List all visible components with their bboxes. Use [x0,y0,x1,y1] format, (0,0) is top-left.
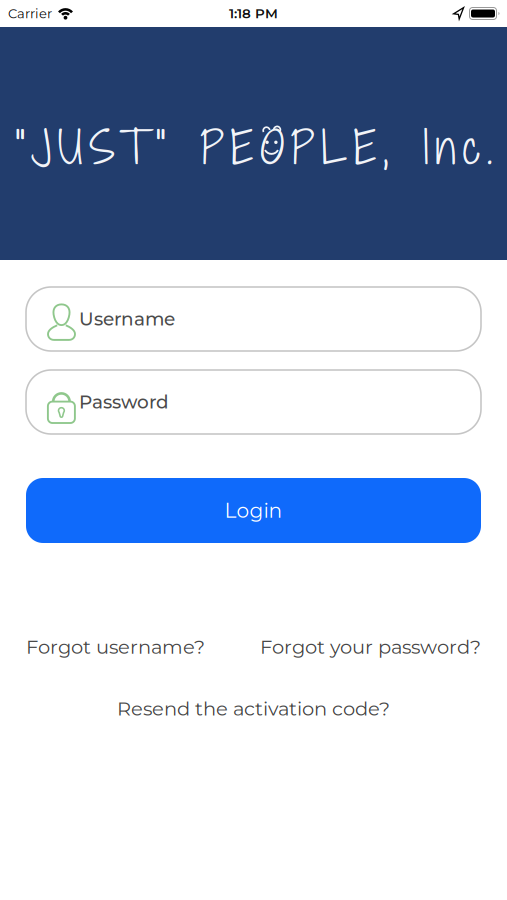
staticText: Carrier [8,5,52,21]
staticText: Login [224,498,282,523]
staticText: Forgot your password? [260,635,481,659]
button[interactable]: Forgot username? [26,635,205,659]
staticText: "JUST" PEOPLE, Inc. [14,115,492,179]
button[interactable]: Password [26,370,481,434]
button[interactable]: Username [26,287,481,351]
staticText: 1:18 PM [229,5,278,22]
button[interactable]: Forgot your password? [260,635,481,659]
button[interactable]: Login [26,478,481,543]
staticText: Username [79,308,175,330]
staticText: Password [79,391,169,413]
button[interactable]: Resend the activation code? [117,697,390,720]
staticText: Forgot username? [26,635,205,659]
staticText: Resend the activation code? [117,697,390,720]
